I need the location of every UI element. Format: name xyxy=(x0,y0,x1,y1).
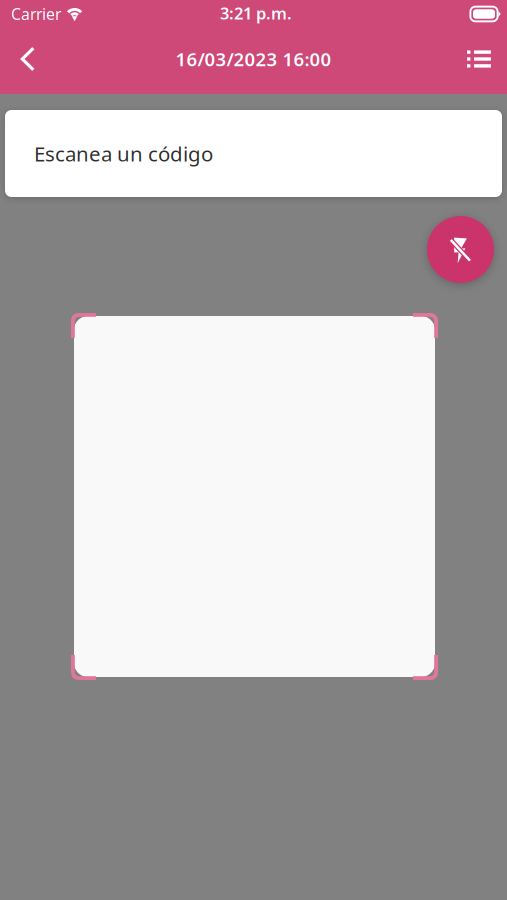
button[interactable]: History xyxy=(456,36,502,82)
button[interactable]: Toggle flash xyxy=(427,216,494,283)
staticText: 16/03/2023 16:00 xyxy=(175,46,331,72)
staticText: 3:21 p.m. xyxy=(220,2,292,24)
staticText: Carrier xyxy=(11,3,61,25)
button[interactable]: Back xyxy=(5,36,51,82)
staticText: Escanea un código xyxy=(34,140,213,167)
